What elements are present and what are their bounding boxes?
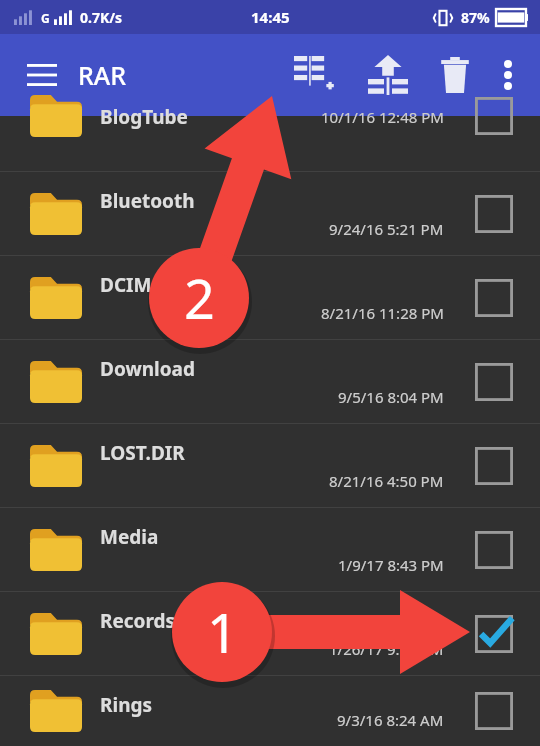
- button[interactable]: Rings: [0, 676, 540, 746]
- button[interactable]: Bluetooth: [0, 172, 540, 255]
- staticText: 1/9/17 8:43 PM: [338, 555, 444, 575]
- staticText: 8/21/16 4:50 PM: [329, 471, 444, 491]
- button[interactable]: DCIM: [0, 256, 540, 339]
- staticText: 14:45: [251, 7, 290, 27]
- button[interactable]: Media: [0, 508, 540, 591]
- staticText: Media: [100, 524, 159, 550]
- button[interactable]: Open navigation menu: [18, 51, 66, 99]
- staticText: DCIM: [100, 272, 152, 298]
- staticText: 8/21/16 11:28 PM: [321, 303, 444, 323]
- staticText: 1/26/17 9:12 PM: [329, 639, 444, 659]
- button[interactable]: More options: [486, 53, 530, 97]
- button[interactable]: Not selected: [470, 274, 518, 322]
- button[interactable]: Not selected: [470, 358, 518, 406]
- staticText: 1: [207, 595, 238, 669]
- staticText: Bluetooth: [100, 188, 195, 214]
- staticText: 0.7K/s: [80, 8, 123, 27]
- button[interactable]: Delete: [430, 50, 480, 100]
- staticText: LOST.DIR: [100, 440, 185, 466]
- staticText: 2: [184, 261, 215, 335]
- staticText: 87%: [461, 8, 490, 27]
- staticText: 9/5/16 8:04 PM: [338, 387, 444, 407]
- staticText: Download: [100, 356, 195, 382]
- button[interactable]: Add to archive: [288, 47, 344, 103]
- button[interactable]: Not selected: [470, 687, 518, 735]
- staticText: BlogTube: [100, 104, 188, 130]
- staticText: RAR: [78, 58, 126, 92]
- staticText: 9/24/16 5:21 PM: [329, 219, 444, 239]
- button[interactable]: Not selected: [470, 190, 518, 238]
- staticText: Rings: [100, 692, 153, 718]
- button[interactable]: Not selected: [470, 442, 518, 490]
- staticText: Records: [100, 608, 176, 634]
- staticText: 10/1/16 12:48 PM: [321, 107, 444, 127]
- button[interactable]: BlogTube: [0, 116, 540, 171]
- button[interactable]: Not selected: [470, 92, 518, 140]
- button[interactable]: Selected: [470, 610, 518, 658]
- button[interactable]: LOST.DIR: [0, 424, 540, 507]
- staticText: 9/3/16 8:24 AM: [337, 710, 444, 730]
- button[interactable]: Records: [0, 592, 540, 675]
- staticText: G: [41, 10, 50, 26]
- button[interactable]: Extract: [362, 49, 414, 101]
- button[interactable]: Not selected: [470, 526, 518, 574]
- button[interactable]: Download: [0, 340, 540, 423]
